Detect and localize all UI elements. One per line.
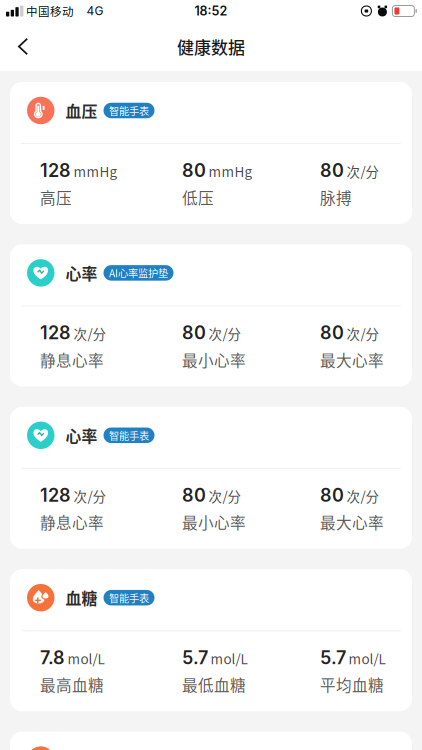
staticText: 次/分: [346, 161, 379, 181]
staticText: 80: [182, 484, 206, 506]
staticText: 次/分: [346, 486, 379, 506]
staticText: mol/L: [210, 648, 247, 668]
staticText: 中国移动: [26, 3, 74, 19]
staticText: mmHg: [208, 161, 252, 181]
staticText: 次/分: [346, 324, 379, 343]
staticText: 血压: [65, 99, 97, 122]
staticText: 静息心率: [40, 511, 104, 533]
staticText: 次/分: [73, 486, 106, 506]
staticText: 80: [182, 159, 206, 181]
staticText: 最小心率: [182, 348, 246, 371]
staticText: 80: [320, 484, 344, 506]
staticText: 高压: [40, 186, 72, 208]
staticText: mol/L: [348, 648, 385, 668]
staticText: 最高血糖: [40, 673, 104, 696]
staticText: 5.7: [320, 647, 346, 668]
staticText: 次/分: [73, 324, 106, 343]
staticText: 智能手表: [109, 590, 149, 605]
staticText: 智能手表: [109, 428, 149, 443]
staticText: 心率: [65, 424, 97, 447]
staticText: 80: [182, 322, 206, 344]
staticText: 5.7: [182, 647, 208, 668]
staticText: 80: [320, 159, 344, 181]
staticText: 128: [40, 159, 71, 181]
staticText: 静息心率: [40, 348, 104, 371]
staticText: AI心率监护垫: [109, 265, 168, 280]
staticText: 低压: [182, 186, 214, 208]
staticText: 128: [40, 484, 71, 506]
staticText: 4G: [86, 4, 103, 18]
staticText: 次/分: [208, 324, 241, 343]
staticText: 最小心率: [182, 511, 246, 533]
staticText: 80: [320, 322, 344, 344]
staticText: 最大心率: [320, 511, 384, 533]
staticText: 128: [40, 322, 71, 344]
staticText: 7.8: [40, 647, 65, 668]
staticText: mol/L: [67, 648, 104, 668]
staticText: 智能手表: [109, 103, 149, 118]
button[interactable]: Back: [0, 24, 46, 68]
staticText: 平均血糖: [320, 673, 384, 696]
staticText: 健康数据: [177, 34, 245, 59]
staticText: 最低血糖: [182, 673, 246, 696]
staticText: 次/分: [208, 486, 241, 506]
staticText: mmHg: [73, 161, 117, 181]
staticText: 脉搏: [320, 186, 352, 208]
staticText: 血糖: [65, 586, 97, 609]
staticText: 最大心率: [320, 348, 384, 371]
staticText: 18:52: [194, 3, 227, 18]
staticText: 心率: [65, 261, 97, 284]
